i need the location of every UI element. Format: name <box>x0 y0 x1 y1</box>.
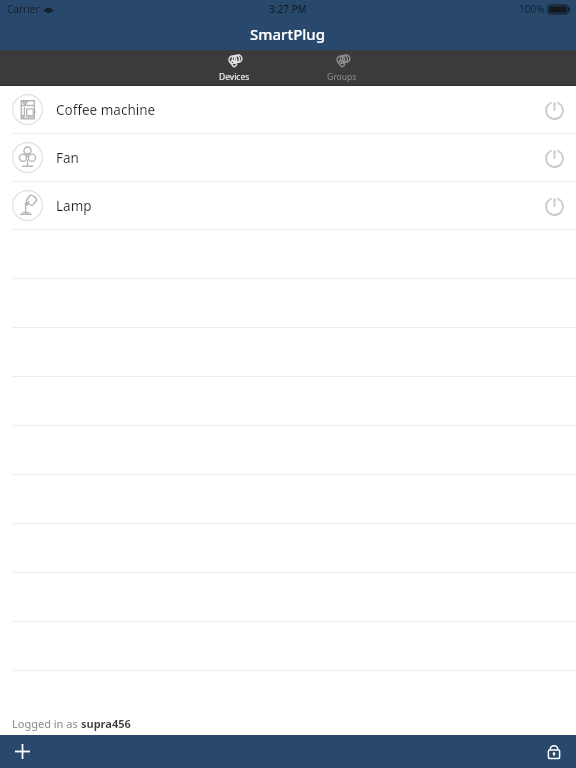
button[interactable]: Toggle power for Fan <box>532 136 576 180</box>
staticText: Lamp <box>56 197 92 215</box>
button[interactable]: Lock <box>532 735 576 768</box>
staticText: 100% <box>519 2 545 16</box>
button[interactable]: Groups <box>314 50 370 86</box>
staticText: 3:27 PM <box>269 2 307 16</box>
staticText: Carrier <box>7 2 40 16</box>
button[interactable]: Toggle power for Coffee machine <box>532 88 576 132</box>
staticText: Groups <box>327 71 357 83</box>
staticText: supra456 <box>81 716 131 731</box>
button[interactable]: Fan <box>0 134 576 181</box>
staticText: SmartPlug <box>250 24 326 44</box>
button[interactable]: Add device <box>0 735 44 768</box>
staticText: Devices <box>219 71 250 83</box>
staticText: Coffee machine <box>56 101 156 119</box>
staticText: Fan <box>56 149 79 167</box>
staticText: Logged in as <box>12 716 81 731</box>
button[interactable]: Devices <box>206 50 262 86</box>
button[interactable]: Toggle power for Lamp <box>532 184 576 228</box>
button[interactable]: Coffee machine <box>0 86 576 133</box>
button[interactable]: Lamp <box>0 182 576 229</box>
